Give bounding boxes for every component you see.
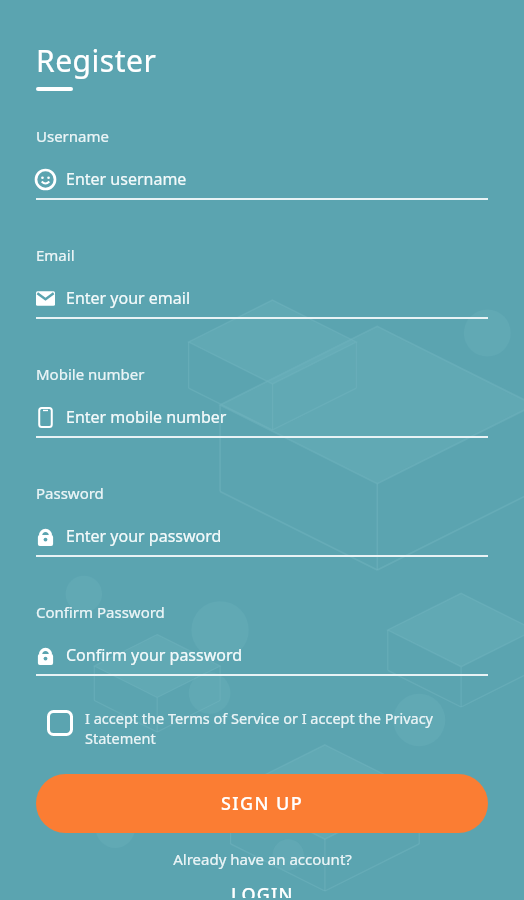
staticText: Password <box>36 483 104 503</box>
staticText: Enter mobile number <box>66 406 227 428</box>
button[interactable]: SIGN UP <box>36 774 488 833</box>
button[interactable]: Enter mobile number <box>36 406 488 428</box>
button[interactable]: Enter your email <box>36 287 488 309</box>
staticText: Enter username <box>66 168 187 190</box>
button[interactable]: Accept terms checkbox <box>0 704 524 753</box>
staticText: LOGIN <box>231 882 294 898</box>
staticText: Enter your email <box>66 287 191 309</box>
button[interactable]: LOGIN <box>215 880 310 900</box>
staticText: Confirm Password <box>36 602 165 622</box>
staticText: Enter your password <box>66 525 222 547</box>
button[interactable]: Enter your password <box>36 525 488 547</box>
button[interactable]: Enter username <box>36 168 488 190</box>
staticText: Confirm your password <box>66 644 243 666</box>
staticText: Register <box>36 40 157 81</box>
staticText: Email <box>36 245 75 265</box>
staticText: Already have an account? <box>173 849 352 869</box>
staticText: Username <box>36 126 109 146</box>
staticText: Mobile number <box>36 364 145 384</box>
button[interactable]: Confirm your password <box>36 644 488 666</box>
other: Accept terms checkbox <box>47 710 73 736</box>
staticText: SIGN UP <box>221 791 304 816</box>
staticText: I accept the Terms of Service or I accep… <box>85 708 488 749</box>
